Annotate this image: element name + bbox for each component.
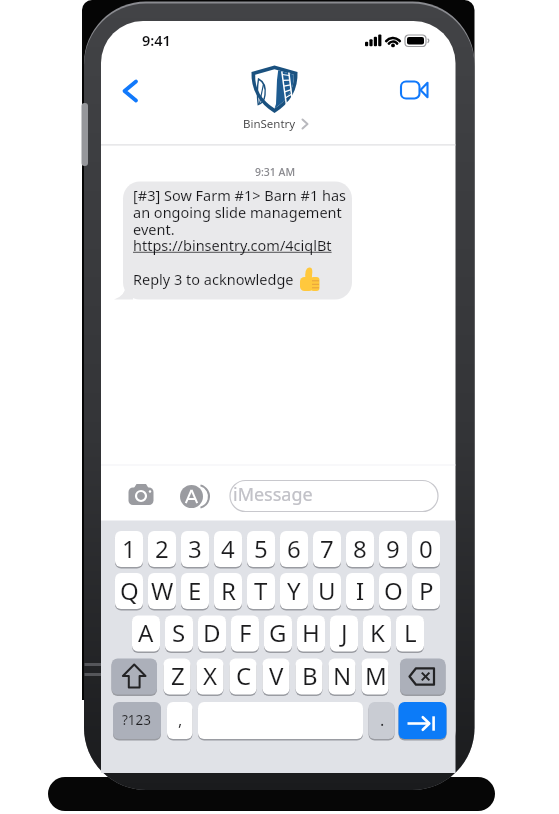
staticText: H bbox=[302, 616, 320, 649]
staticText: [#3] Sow Farm #1> Barn #1 has bbox=[133, 185, 347, 205]
button[interactable]: P bbox=[412, 572, 440, 608]
staticText: I bbox=[356, 574, 365, 607]
staticText: P bbox=[419, 574, 434, 607]
button[interactable]: V bbox=[263, 657, 290, 693]
button[interactable]: D bbox=[198, 614, 226, 650]
staticText: F bbox=[239, 616, 252, 649]
staticText: ?123 bbox=[122, 711, 152, 729]
button[interactable]: Y bbox=[280, 572, 308, 608]
staticText: 9:41 bbox=[142, 30, 171, 50]
button[interactable]: BinSentry bbox=[209, 99, 329, 149]
staticText: K bbox=[370, 616, 385, 649]
staticText: G bbox=[269, 616, 287, 649]
staticText: 7 bbox=[320, 532, 334, 565]
button[interactable]: 8 bbox=[346, 530, 374, 566]
button[interactable]: 5 bbox=[247, 530, 275, 566]
staticText: Q bbox=[120, 574, 139, 607]
button[interactable]: S bbox=[165, 614, 193, 650]
button[interactable] bbox=[396, 76, 432, 104]
staticText: 0 bbox=[419, 532, 433, 565]
button[interactable]: T bbox=[247, 572, 275, 608]
staticText: 2 bbox=[155, 532, 169, 565]
staticText: L bbox=[404, 616, 417, 649]
button[interactable]: O bbox=[379, 572, 407, 608]
staticText: an ongoing slide management bbox=[133, 202, 342, 222]
button[interactable]: M bbox=[362, 657, 389, 693]
staticText: Y bbox=[287, 574, 301, 607]
staticText: B bbox=[302, 659, 318, 692]
button[interactable]: B bbox=[296, 657, 323, 693]
staticText: Z bbox=[171, 659, 185, 692]
button[interactable]: K bbox=[363, 614, 391, 650]
staticText: A bbox=[138, 616, 154, 649]
button[interactable]: W bbox=[148, 572, 176, 608]
staticText: X bbox=[203, 659, 218, 692]
staticText: 3 bbox=[188, 532, 202, 565]
button[interactable]: 1 bbox=[115, 530, 143, 566]
staticText: 6 bbox=[287, 532, 301, 565]
button[interactable]: U bbox=[313, 572, 341, 608]
button[interactable] bbox=[399, 701, 447, 738]
button[interactable] bbox=[198, 701, 363, 738]
button[interactable] bbox=[126, 481, 158, 511]
button[interactable]: I bbox=[346, 572, 374, 608]
staticText: 8 bbox=[353, 532, 367, 565]
staticText: V bbox=[269, 659, 284, 692]
button[interactable]: G bbox=[264, 614, 292, 650]
staticText: J bbox=[341, 616, 348, 649]
staticText: T bbox=[254, 574, 268, 607]
button[interactable]: Q bbox=[115, 572, 143, 608]
staticText: M bbox=[365, 659, 387, 692]
staticText: 4 bbox=[221, 532, 235, 565]
staticText: . bbox=[380, 709, 385, 731]
button[interactable]: 3 bbox=[181, 530, 209, 566]
button[interactable]: , bbox=[167, 701, 193, 738]
staticText: O bbox=[384, 574, 403, 607]
button[interactable] bbox=[230, 480, 438, 511]
staticText: D bbox=[203, 616, 221, 649]
staticText: 9 bbox=[386, 532, 400, 565]
staticText: 1 bbox=[122, 532, 136, 565]
button[interactable]: 0 bbox=[412, 530, 440, 566]
button[interactable]: N bbox=[329, 657, 356, 693]
button[interactable]: C bbox=[230, 657, 257, 693]
button[interactable]: R bbox=[214, 572, 242, 608]
staticText: E bbox=[188, 574, 202, 607]
button[interactable]: F bbox=[231, 614, 259, 650]
staticText: iMessage bbox=[233, 482, 313, 507]
staticText: 5 bbox=[254, 532, 268, 565]
button[interactable]: 2 bbox=[148, 530, 176, 566]
button[interactable]: 4 bbox=[214, 530, 242, 566]
staticText: N bbox=[333, 659, 352, 692]
button[interactable] bbox=[118, 75, 144, 107]
button[interactable]: . bbox=[369, 701, 395, 738]
button[interactable]: X bbox=[197, 657, 224, 693]
staticText: https://binsentry.com/4ciqlBt bbox=[133, 235, 332, 255]
button[interactable]: J bbox=[330, 614, 358, 650]
staticText: BinSentry bbox=[243, 116, 296, 132]
button[interactable] bbox=[178, 481, 210, 511]
staticText: Reply 3 to acknowledge bbox=[133, 269, 294, 289]
staticText: U bbox=[318, 574, 336, 607]
button[interactable]: https://binsentry.com/4ciqlBt bbox=[133, 235, 332, 255]
button[interactable]: 6 bbox=[280, 530, 308, 566]
staticText: 9:31 AM bbox=[255, 165, 296, 179]
button[interactable] bbox=[400, 657, 446, 693]
button[interactable] bbox=[112, 657, 158, 693]
button[interactable]: E bbox=[181, 572, 209, 608]
staticText: , bbox=[178, 709, 183, 731]
staticText: W bbox=[151, 574, 174, 607]
button[interactable]: L bbox=[396, 614, 424, 650]
button[interactable]: H bbox=[297, 614, 325, 650]
staticText: S bbox=[172, 616, 186, 649]
button[interactable]: A bbox=[132, 614, 160, 650]
button[interactable]: 9 bbox=[379, 530, 407, 566]
button[interactable]: Z bbox=[164, 657, 191, 693]
button[interactable]: 7 bbox=[313, 530, 341, 566]
staticText: R bbox=[221, 574, 236, 607]
staticText: event. bbox=[133, 219, 175, 239]
staticText: C bbox=[236, 659, 252, 692]
button[interactable]: ?123 bbox=[113, 701, 161, 738]
